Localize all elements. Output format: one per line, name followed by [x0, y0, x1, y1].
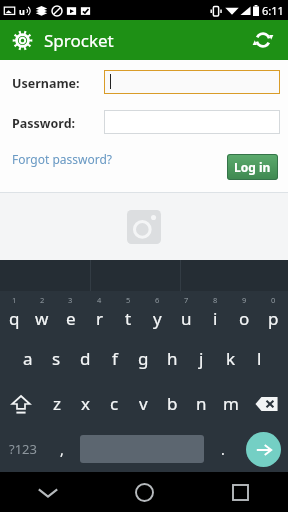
staticText: z: [53, 392, 61, 415]
staticText: a: [23, 347, 33, 370]
button[interactable]: 2: [28, 291, 56, 336]
staticText: g: [138, 347, 149, 370]
staticText: 8: [213, 295, 218, 305]
staticText: Log in: [234, 159, 271, 175]
staticText: 1: [12, 295, 17, 305]
staticText: o: [239, 307, 250, 330]
button[interactable]: a: [13, 336, 42, 381]
button[interactable]: b: [158, 381, 187, 426]
button[interactable]: c: [100, 381, 129, 426]
staticText: Sprocket: [44, 29, 114, 52]
staticText: 2: [40, 295, 45, 305]
button[interactable]: m: [216, 381, 245, 426]
button[interactable]: 1: [0, 291, 28, 336]
button[interactable]: Log in: [227, 154, 278, 180]
button[interactable]: Home: [96, 472, 192, 512]
staticText: 7: [184, 295, 189, 305]
button[interactable]: 9: [230, 291, 259, 336]
button[interactable]: Comma: [46, 426, 77, 472]
button[interactable]: Period: [207, 426, 238, 472]
staticText: ?123: [9, 440, 37, 458]
staticText: 6: [155, 295, 160, 305]
staticText: s: [52, 347, 61, 370]
staticText: 0: [271, 295, 276, 305]
staticText: c: [110, 392, 119, 415]
button[interactable]: ?123: [0, 426, 46, 472]
staticText: 6:11: [262, 3, 284, 18]
button[interactable]: k: [216, 336, 245, 381]
staticText: e: [66, 307, 76, 330]
staticText: p: [268, 307, 279, 330]
button[interactable]: Refresh: [246, 23, 280, 57]
staticText: u: [181, 307, 192, 330]
staticText: d: [80, 347, 91, 370]
button[interactable]: 6: [143, 291, 172, 336]
button[interactable]: g: [129, 336, 158, 381]
staticText: 9: [242, 295, 247, 305]
button[interactable]: 3: [56, 291, 85, 336]
staticText: l: [257, 347, 262, 370]
button[interactable]: Shift: [0, 381, 42, 426]
staticText: b: [167, 392, 178, 415]
staticText: w: [35, 307, 49, 330]
staticText: n: [196, 392, 207, 415]
staticText: i: [213, 307, 218, 330]
button[interactable]: 8: [201, 291, 230, 336]
button[interactable]: 0: [259, 291, 288, 336]
staticText: ,: [60, 440, 64, 459]
button[interactable]: 7: [172, 291, 201, 336]
button[interactable]: l: [245, 336, 274, 381]
staticText: 5: [126, 295, 131, 305]
button[interactable]: Forgot password?: [12, 151, 113, 167]
button[interactable]: z: [42, 381, 71, 426]
button[interactable]: 4: [85, 291, 114, 336]
button[interactable]: 5: [114, 291, 143, 336]
staticText: Username:: [12, 75, 80, 92]
button[interactable]: d: [71, 336, 100, 381]
staticText: x: [81, 392, 90, 415]
button[interactable]: Back: [0, 472, 96, 512]
staticText: m: [223, 392, 239, 415]
staticText: r: [96, 307, 104, 330]
button[interactable]: j: [187, 336, 216, 381]
staticText: u: [19, 5, 25, 17]
button[interactable]: s: [42, 336, 71, 381]
button[interactable]: f: [100, 336, 129, 381]
staticText: q: [9, 307, 20, 330]
staticText: j: [199, 347, 204, 370]
button[interactable]: Backspace: [245, 381, 288, 426]
button[interactable]: Recents: [192, 472, 288, 512]
staticText: 4: [97, 295, 102, 305]
button[interactable]: [104, 110, 280, 134]
staticText: Password:: [12, 115, 76, 132]
button[interactable]: n: [187, 381, 216, 426]
button[interactable]: [104, 70, 280, 94]
staticText: t: [125, 307, 132, 330]
button[interactable]: h: [158, 336, 187, 381]
staticText: v: [139, 392, 148, 415]
staticText: h: [167, 347, 178, 370]
staticText: y: [153, 307, 162, 330]
staticText: 3: [68, 295, 73, 305]
staticText: Forgot password?: [12, 151, 113, 167]
button[interactable]: Enter: [238, 426, 288, 472]
staticText: k: [226, 347, 236, 370]
button[interactable]: x: [71, 381, 100, 426]
button[interactable]: v: [129, 381, 158, 426]
staticText: .: [221, 440, 225, 459]
staticText: f: [112, 347, 118, 370]
